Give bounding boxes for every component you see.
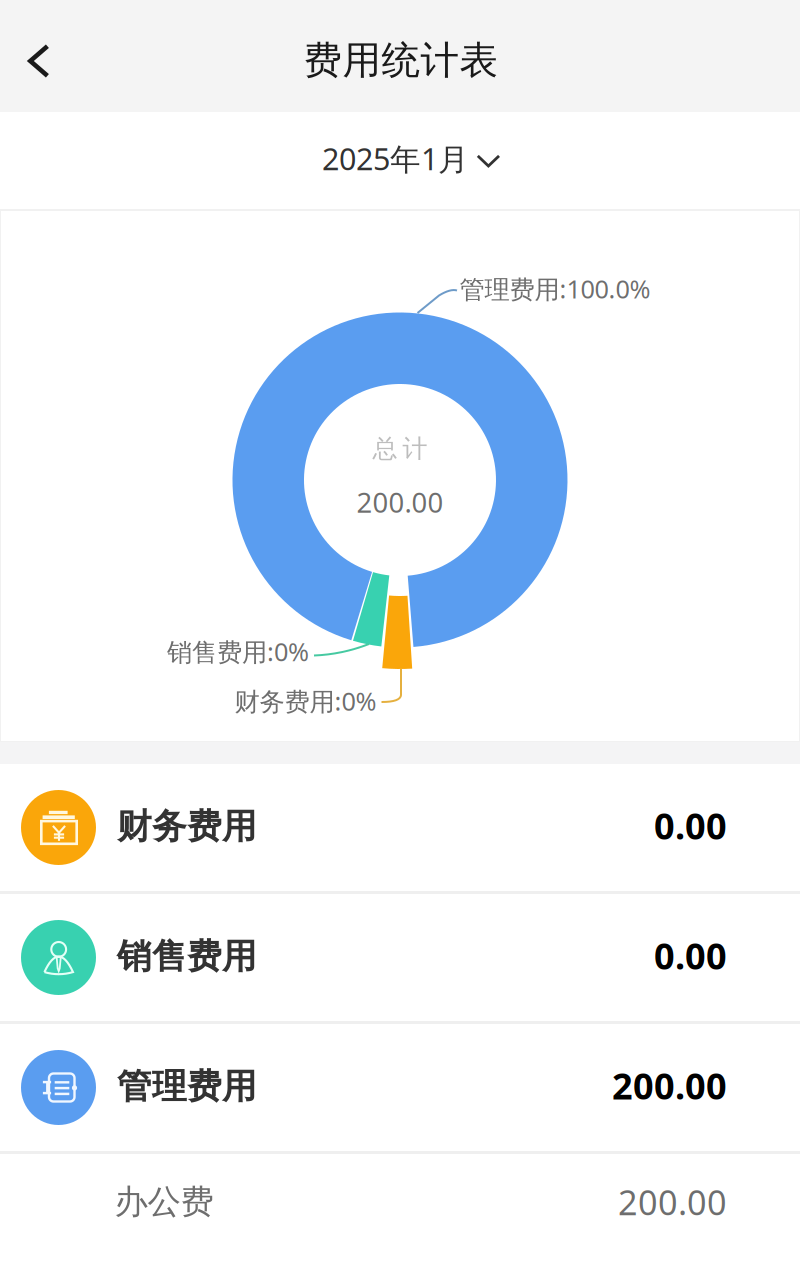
staticText: 管理费用 [117,1065,257,1108]
button[interactable]: 财务费用 [0,764,800,894]
staticText: 费用统计表 [303,36,498,85]
button[interactable]: 办公费 [0,1154,800,1250]
staticText: 管理费用:100.0% [459,271,650,306]
staticText: 200.00 [612,1061,727,1110]
staticText: 财务费用 [117,805,257,848]
staticText: 200.00 [356,483,443,521]
button[interactable]: 2025年1月 [0,112,800,210]
staticText: 2025年1月 [322,138,469,179]
staticText: 办公费 [114,1181,213,1223]
staticText: 200.00 [618,1179,727,1225]
button[interactable]: 管理费用 [0,1024,800,1154]
button[interactable]: 销售费用 [0,894,800,1024]
staticText: 销售费用 [117,935,257,978]
staticText: 0.00 [654,931,727,980]
staticText: 0.00 [654,801,727,850]
staticText: 总 计 [372,433,427,464]
staticText: 财务费用:0% [234,684,376,718]
staticText: 销售费用:0% [167,634,309,669]
button[interactable]: Back [2,30,78,92]
